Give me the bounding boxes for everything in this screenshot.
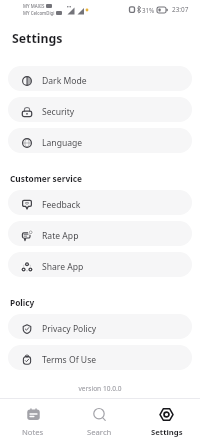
button[interactable]: Dark Mode — [8, 66, 192, 91]
staticText: Terms Of Use — [42, 354, 97, 366]
staticText: Settings — [151, 427, 183, 437]
button[interactable]: Settings — [133, 401, 200, 443]
button[interactable]: Terms Of Use — [8, 345, 192, 370]
button[interactable]: Privacy Policy — [8, 314, 192, 339]
staticText: Policy — [10, 297, 35, 308]
staticText: Language — [42, 137, 83, 149]
staticText: Settings — [12, 30, 63, 47]
staticText: Search — [87, 427, 112, 437]
button[interactable]: Rate App — [8, 221, 192, 246]
staticText: Security — [42, 106, 75, 118]
button[interactable]: Share App — [8, 252, 192, 277]
button[interactable]: Notes — [0, 401, 66, 443]
staticText: Customer service — [10, 173, 82, 184]
button[interactable]: Language — [8, 128, 192, 153]
staticText: MY CelcomDigi — [23, 10, 55, 16]
staticText: Feedback — [42, 199, 81, 211]
staticText: MY MAXIS — [23, 3, 45, 9]
staticText: 31% — [142, 6, 155, 14]
staticText: Rate App — [42, 230, 79, 242]
staticText: Dark Mode — [42, 75, 87, 87]
button[interactable]: Feedback — [8, 190, 192, 215]
staticText: version 10.0.0 — [0, 384, 200, 393]
button[interactable]: Search — [66, 401, 133, 443]
button[interactable]: Security — [8, 97, 192, 122]
staticText: Share App — [42, 261, 84, 273]
staticText: Privacy Policy — [42, 323, 97, 335]
staticText: 23:07 — [172, 5, 189, 14]
staticText: Notes — [22, 427, 44, 437]
